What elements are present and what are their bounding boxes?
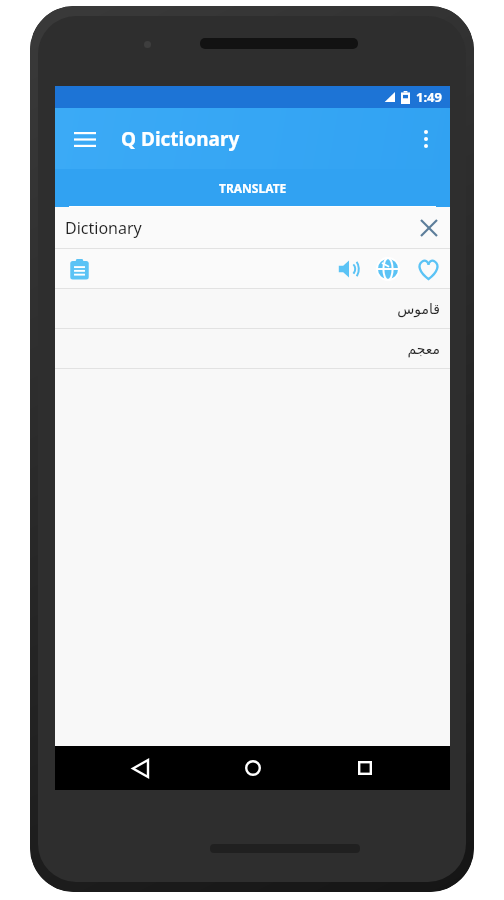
staticText: معجم bbox=[407, 341, 440, 357]
staticText: Q Dictionary bbox=[121, 126, 240, 152]
button[interactable]: Copy to clipboard bbox=[59, 249, 99, 289]
button[interactable]: Clear text bbox=[408, 207, 450, 249]
button[interactable]: Back bbox=[112, 746, 168, 790]
button[interactable]: Translate on the web bbox=[368, 249, 408, 289]
button[interactable]: قاموس bbox=[55, 289, 450, 329]
staticText: 1:49 bbox=[416, 88, 442, 106]
button[interactable]: Home bbox=[225, 746, 281, 790]
button[interactable]: Add to favorites bbox=[408, 249, 448, 289]
button[interactable]: TRANSLATE bbox=[55, 169, 450, 207]
button[interactable]: Play pronunciation bbox=[328, 249, 368, 289]
button[interactable]: Recent apps bbox=[337, 746, 393, 790]
button[interactable]: معجم bbox=[55, 329, 450, 369]
staticText: قاموس bbox=[397, 301, 440, 317]
button[interactable]: More options bbox=[402, 115, 450, 163]
button[interactable]: Open navigation menu bbox=[61, 115, 109, 163]
staticText: Dictionary bbox=[65, 217, 142, 239]
button[interactable]: Dictionary bbox=[55, 207, 450, 249]
staticText: TRANSLATE bbox=[219, 180, 287, 196]
